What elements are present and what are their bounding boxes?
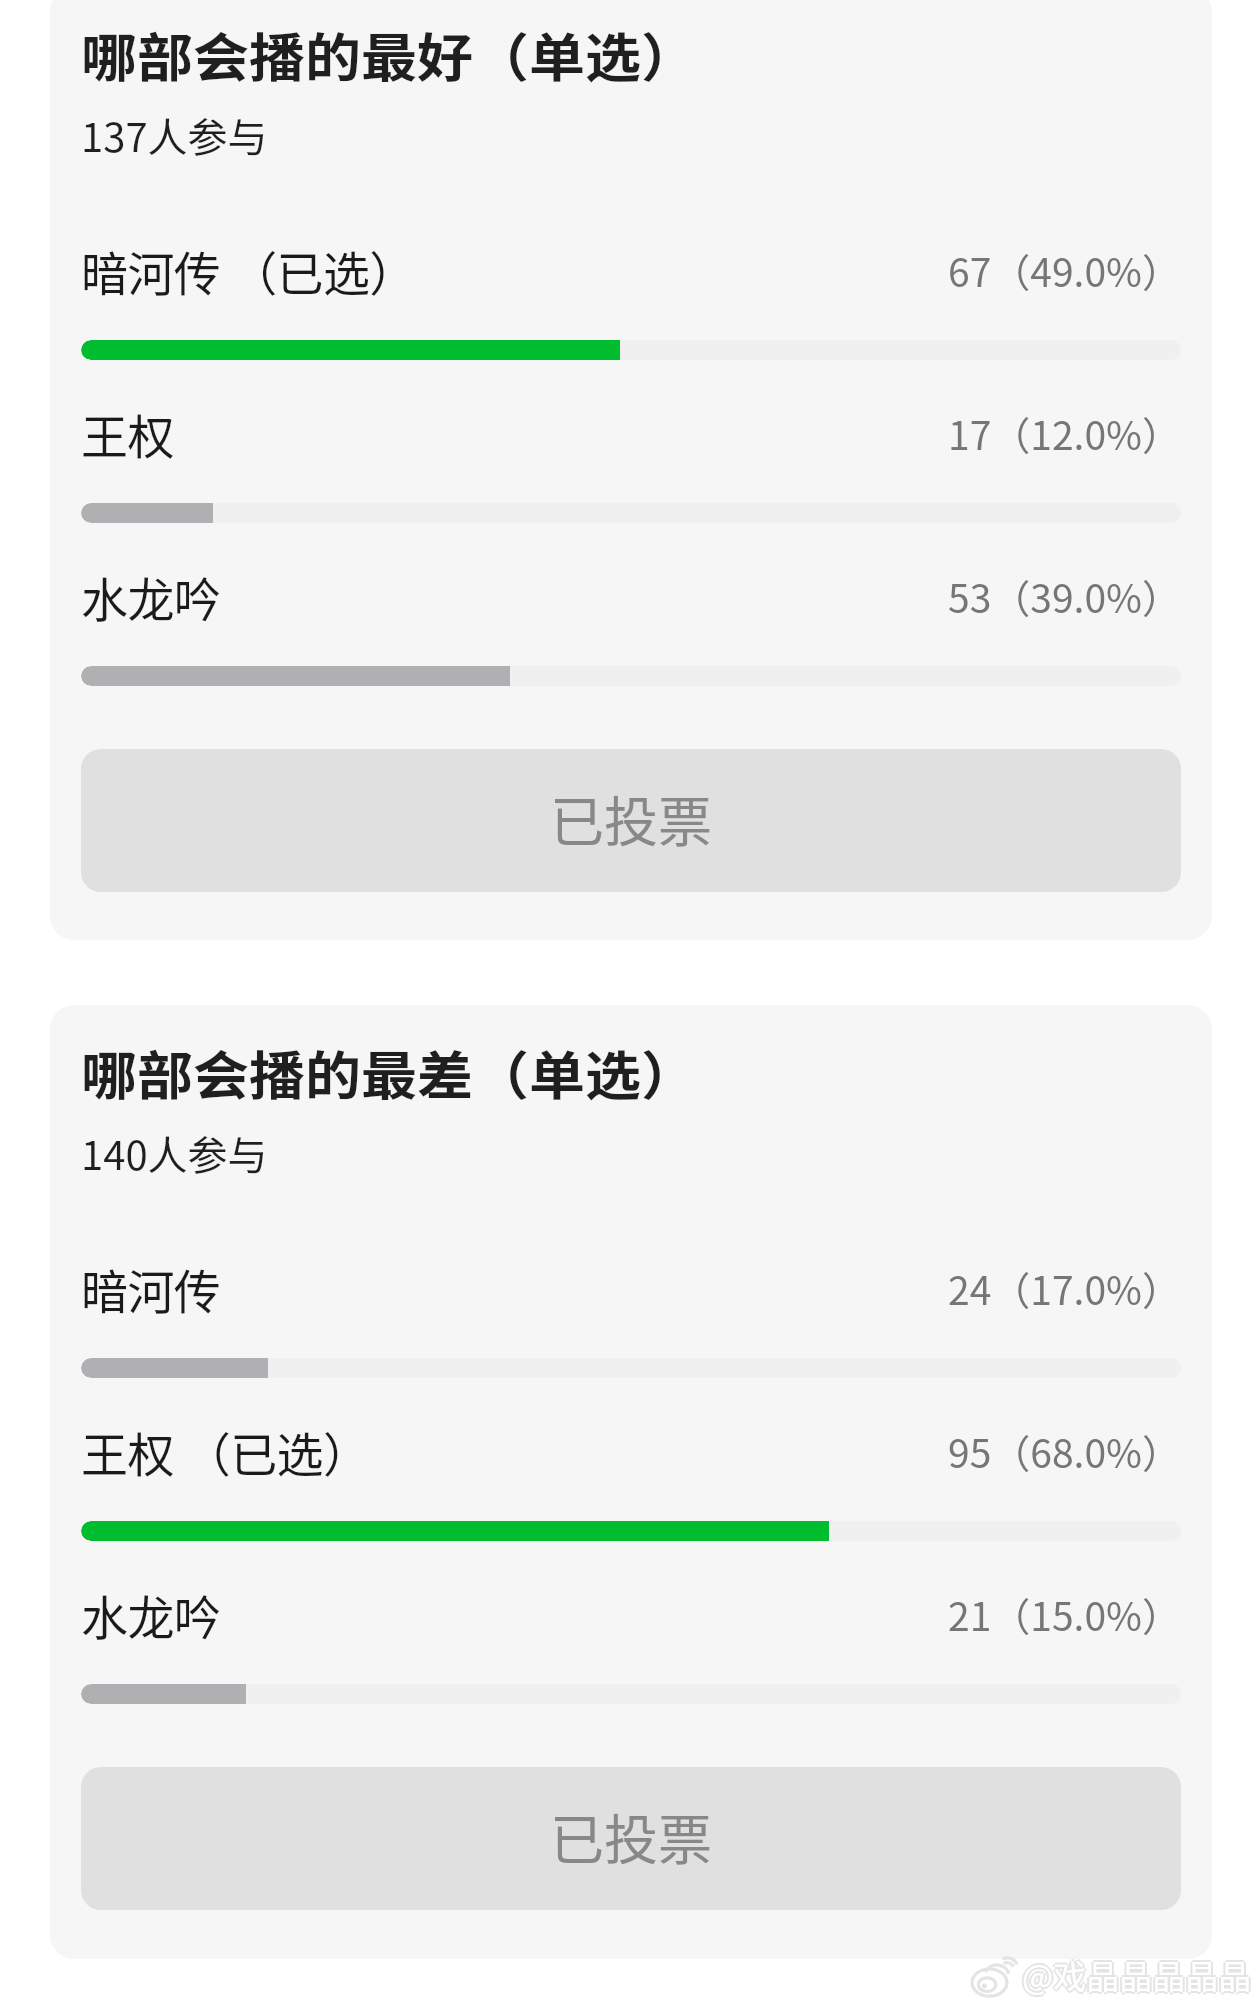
staticText: 21（15.0%） (81, 1586, 1181, 1642)
button[interactable]: 水龙吟 (81, 1558, 1181, 1686)
staticText: 王权 (81, 399, 174, 467)
staticText: 140人参与 (81, 1124, 268, 1182)
button[interactable]: 水龙吟 (81, 540, 1181, 668)
button[interactable]: 暗河传 (81, 1232, 1181, 1360)
staticText: 67（49.0%） (81, 242, 1181, 298)
staticText: 哪部会播的最好（单选） (81, 17, 697, 92)
staticText: 17（12.0%） (81, 405, 1181, 461)
staticText: 53（39.0%） (81, 568, 1181, 624)
staticText: 137人参与 (81, 106, 268, 164)
button[interactable]: 已投票 (81, 749, 1181, 892)
staticText: @戏晶晶晶晶晶 (1022, 1949, 1252, 1997)
button[interactable]: 王权 (81, 377, 1181, 505)
staticText: @戏晶晶晶晶晶 (1024, 1951, 1254, 1999)
staticText: 水龙吟 (81, 562, 221, 630)
staticText: @戏晶晶晶晶晶 (1020, 1951, 1250, 1999)
button[interactable]: 已投票 (81, 1767, 1181, 1910)
staticText: 王权 （已选） (81, 1417, 370, 1485)
staticText: 暗河传 （已选） (81, 236, 416, 304)
staticText: @戏晶晶晶晶晶 (1022, 1953, 1252, 2001)
staticText: @戏晶晶晶晶晶 (1022, 1951, 1252, 1999)
button[interactable]: 王权 （已选） (81, 1395, 1181, 1523)
staticText: 已投票 (550, 1797, 712, 1875)
staticText: 哪部会播的最差（单选） (81, 1035, 697, 1110)
staticText: 95（68.0%） (81, 1423, 1181, 1479)
staticText: 已投票 (550, 779, 712, 857)
other: Weibo (972, 1957, 1018, 1997)
button[interactable]: 暗河传 （已选） (81, 214, 1181, 342)
staticText: 水龙吟 (81, 1580, 221, 1648)
staticText: 24（17.0%） (81, 1260, 1181, 1316)
staticText: 暗河传 (81, 1254, 221, 1322)
